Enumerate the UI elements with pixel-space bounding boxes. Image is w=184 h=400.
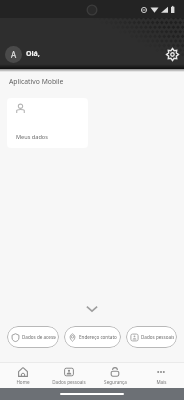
button[interactable]: Dados pessoais (46, 363, 92, 388)
button[interactable]: A (5, 46, 22, 63)
button[interactable]: Endereço contato (64, 326, 121, 348)
button[interactable]: Home (0, 363, 46, 388)
staticText: Dados de acesso (22, 334, 56, 340)
staticText: Aplicativo Mobile (9, 77, 64, 86)
staticText: A (11, 49, 17, 60)
button[interactable]: Expandir (84, 300, 100, 316)
button[interactable]: Meus dados (7, 98, 88, 148)
button[interactable]: Settings (163, 45, 181, 63)
staticText: Dados pessoais (52, 379, 86, 385)
staticText: Mais (156, 379, 167, 385)
button[interactable]: Segurança (92, 363, 138, 388)
staticText: Meus dados (16, 133, 48, 141)
staticText: Endereço contato (79, 334, 117, 340)
staticText: Segurança (104, 379, 127, 385)
staticText: Home (16, 379, 30, 385)
staticText: Olá, (26, 49, 40, 59)
button[interactable]: Dados pessoais (126, 326, 177, 348)
staticText: Dados pessoais (141, 334, 174, 340)
button[interactable]: Mais (138, 363, 184, 388)
button[interactable]: Dados de acesso (7, 326, 59, 348)
